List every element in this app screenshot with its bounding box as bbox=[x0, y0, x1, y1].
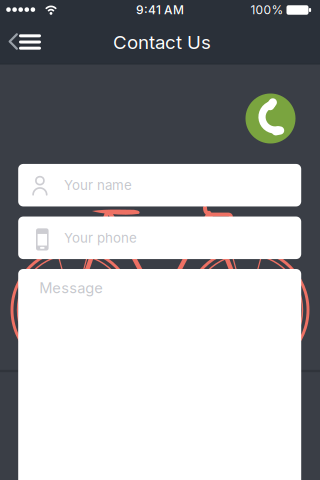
staticText: 9:41 AM bbox=[136, 3, 184, 17]
staticText: Message bbox=[39, 279, 103, 296]
button[interactable]: Your phone bbox=[18, 217, 301, 259]
button[interactable]: Back bbox=[5, 31, 21, 51]
staticText: 100% bbox=[250, 3, 283, 17]
button[interactable]: Call bbox=[245, 93, 295, 143]
button[interactable]: Menu bbox=[17, 32, 43, 52]
staticText: Contact Us bbox=[113, 31, 211, 53]
staticText: Your name bbox=[64, 177, 132, 193]
button[interactable]: Your name bbox=[18, 164, 301, 206]
button[interactable]: Message bbox=[18, 269, 301, 480]
staticText: Your phone bbox=[64, 230, 137, 246]
